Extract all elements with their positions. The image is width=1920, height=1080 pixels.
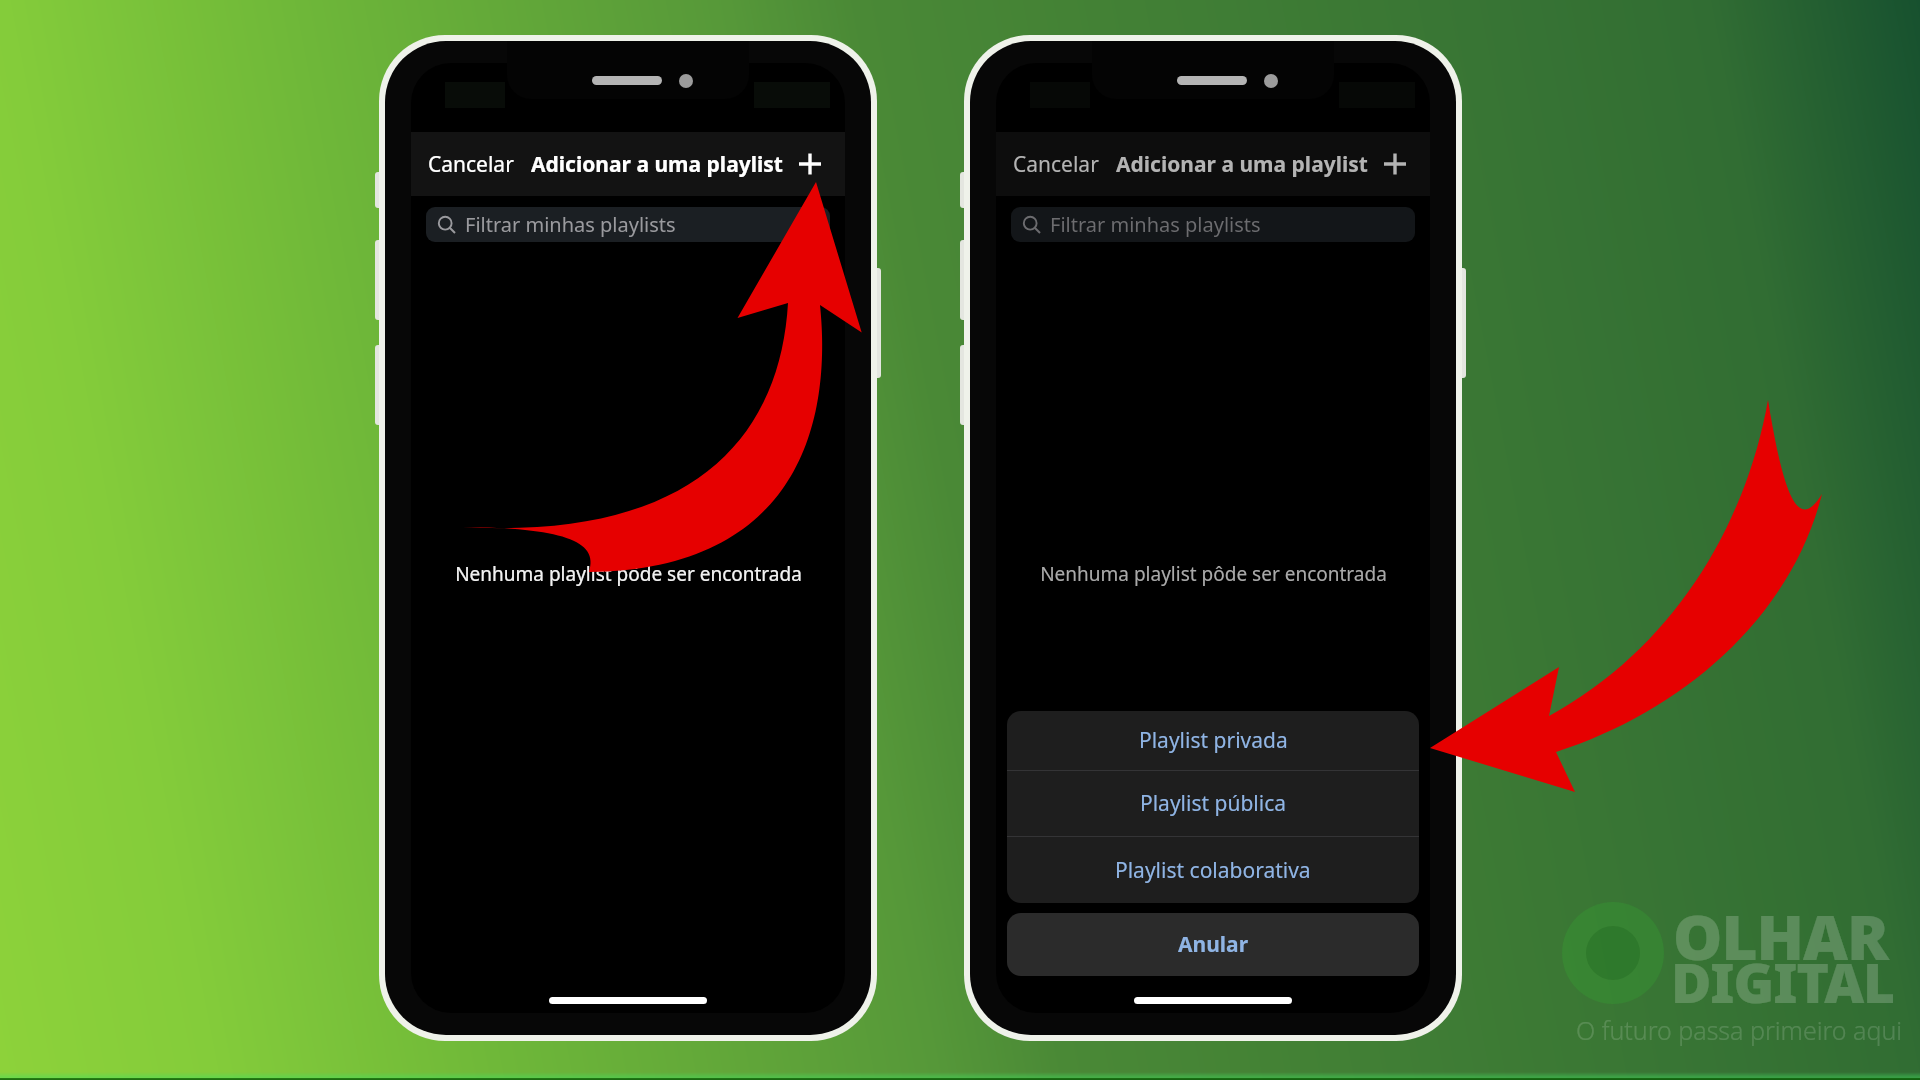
staticText: OLHAR [1673,894,1888,978]
button[interactable]: Criar playlist [788,142,832,186]
staticText: Nenhuma playlist pôde ser encontrada [455,561,802,587]
staticText: Filtrar minhas playlists [465,211,676,238]
button[interactable]: Playlist colaborativa [1007,837,1419,903]
button[interactable]: Cancelar [1013,150,1099,179]
staticText: Adicionar a uma playlist [531,150,783,179]
staticText: Anular [1178,930,1249,959]
button[interactable]: Anular [1007,913,1419,976]
staticText: Playlist pública [1140,789,1287,818]
staticText: Filtrar minhas playlists [1050,211,1261,238]
button[interactable]: Cancelar [428,150,514,179]
button[interactable]: Playlist pública [1007,771,1419,836]
button[interactable]: Filtrar minhas playlists [426,207,830,242]
staticText: Playlist privada [1139,726,1288,755]
button[interactable]: Filtrar minhas playlists [1011,207,1415,242]
staticText: O futuro passa primeiro aqui [1576,1013,1903,1047]
button[interactable]: Criar playlist [1373,142,1417,186]
staticText: Playlist colaborativa [1115,856,1311,885]
staticText: Nenhuma playlist pôde ser encontrada [1040,561,1387,587]
staticText: Adicionar a uma playlist [1116,150,1368,179]
staticText: DIGITAL [1671,944,1895,1019]
button[interactable]: Playlist privada [1007,711,1419,770]
